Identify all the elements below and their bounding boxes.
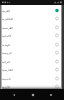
button[interactable]: الروسية — [2, 48, 61, 57]
button[interactable]: Recent apps — [45, 89, 56, 100]
staticText: الأردية — [2, 85, 54, 88]
staticText: الألمانية — [2, 34, 54, 37]
button[interactable]: الألمانية — [2, 31, 61, 40]
staticText: الإنجليزية — [2, 17, 54, 20]
staticText: الفارسية — [2, 68, 54, 71]
staticText: الروسية — [2, 51, 54, 54]
staticText: الفرنسية — [2, 26, 54, 29]
button[interactable]: الأردية — [2, 82, 61, 91]
button[interactable]: الإنجليزية — [2, 14, 61, 23]
button[interactable]: Home — [27, 89, 38, 100]
button[interactable]: الفرنسية — [2, 23, 61, 32]
button[interactable]: التركية — [2, 57, 61, 66]
button[interactable]: Back — [8, 89, 19, 100]
button[interactable]: العربية — [2, 6, 61, 15]
button[interactable]: الفارسية — [2, 65, 61, 74]
staticText: العربية — [2, 9, 54, 12]
button[interactable]: الهندية — [2, 40, 61, 49]
button[interactable]: الصينية — [2, 74, 61, 83]
staticText: التركية — [2, 60, 54, 63]
staticText: الصينية — [2, 77, 54, 80]
staticText: الهندية — [2, 43, 54, 46]
